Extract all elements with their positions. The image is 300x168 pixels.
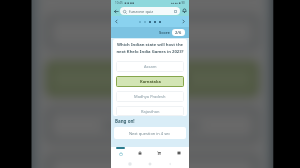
staticText: Next question in 4 sec (129, 131, 171, 136)
staticText: 10:45 ▪ ▪ ▪▪ (115, 1, 134, 5)
staticText: Which Indian state will host the next Kh… (116, 42, 184, 54)
button[interactable]: Cart (149, 147, 169, 160)
staticText: Karnataka (121, 71, 186, 86)
staticText: Assam (134, 24, 174, 40)
button[interactable]: funzone quiz (120, 7, 180, 15)
button[interactable]: Karnataka (47, 62, 258, 96)
staticText: Assam (144, 64, 157, 69)
button[interactable]: Assam (47, 15, 258, 49)
button[interactable]: Previous (112, 17, 121, 26)
button[interactable]: Notifications (180, 6, 189, 15)
button[interactable]: Rajasthan (116, 106, 184, 116)
staticText: Score (159, 30, 170, 35)
button[interactable]: Karnataka (116, 76, 184, 87)
button[interactable]: Next (179, 17, 188, 26)
staticText: Bang on! (115, 118, 135, 124)
button[interactable]: Account (130, 147, 149, 160)
staticText: funzone quiz (129, 9, 154, 14)
button[interactable]: Rajasthan (47, 155, 258, 168)
button[interactable]: Back (112, 7, 120, 15)
staticText: Karnataka (140, 79, 161, 84)
button[interactable]: Next question in 4 sec (114, 127, 186, 139)
staticText: Rajasthan (141, 109, 160, 114)
staticText: ▴▴ ▴▴ ▪ 90 (171, 1, 185, 5)
staticText: 2/6 (175, 30, 182, 35)
button[interactable]: Madhya Pradesh (116, 91, 184, 102)
button[interactable]: Home (111, 147, 130, 160)
staticText: Madhya Pradesh (103, 117, 202, 133)
staticText: Madhya Pradesh (134, 94, 166, 99)
button[interactable]: Madhya Pradesh (47, 108, 258, 142)
staticText: Rajasthan (124, 164, 183, 168)
button[interactable]: Assam (116, 61, 184, 72)
button[interactable]: Menu (169, 147, 189, 160)
